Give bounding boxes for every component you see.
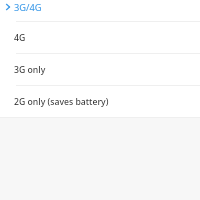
button[interactable]: 2G only (saves battery)	[0, 86, 200, 117]
staticText: 4G	[14, 32, 26, 44]
staticText: 3G/4G	[14, 1, 42, 14]
button[interactable]: Expand 3G/4G section	[0, 0, 200, 21]
button[interactable]: 3G only	[0, 54, 200, 85]
button[interactable]: 4G	[0, 22, 200, 53]
staticText: 2G only (saves battery)	[14, 96, 109, 108]
other: Expand 3G/4G section	[0, 0, 14, 14]
staticText: 3G only	[14, 64, 46, 76]
